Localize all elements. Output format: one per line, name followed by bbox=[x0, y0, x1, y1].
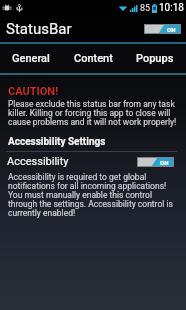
staticText: Please exclude this status bar from any … bbox=[8, 99, 180, 127]
button[interactable]: General bbox=[0, 44, 62, 73]
staticText: Content bbox=[74, 52, 113, 65]
button[interactable]: Content bbox=[62, 44, 124, 73]
staticText: Accessibility is required to get global … bbox=[8, 172, 175, 218]
staticText: Popups bbox=[136, 52, 174, 65]
staticText: StatusBar bbox=[6, 20, 72, 38]
other: Debugging bbox=[2, 3, 12, 13]
staticText: ON bbox=[167, 26, 176, 33]
staticText: Accessibility Settings bbox=[8, 136, 106, 148]
other: USB connected bbox=[15, 4, 24, 13]
staticText: 10:18 bbox=[159, 2, 184, 14]
staticText: ON bbox=[160, 159, 169, 166]
staticText: CAUTION! bbox=[8, 85, 59, 98]
button[interactable]: Accessibility bbox=[0, 152, 186, 171]
button[interactable]: Toggle status bar on or off bbox=[144, 24, 181, 34]
staticText: Accessibility bbox=[7, 155, 69, 168]
staticText: 85 bbox=[140, 3, 151, 14]
staticText: General bbox=[12, 52, 50, 65]
button[interactable]: Popups bbox=[124, 44, 186, 73]
